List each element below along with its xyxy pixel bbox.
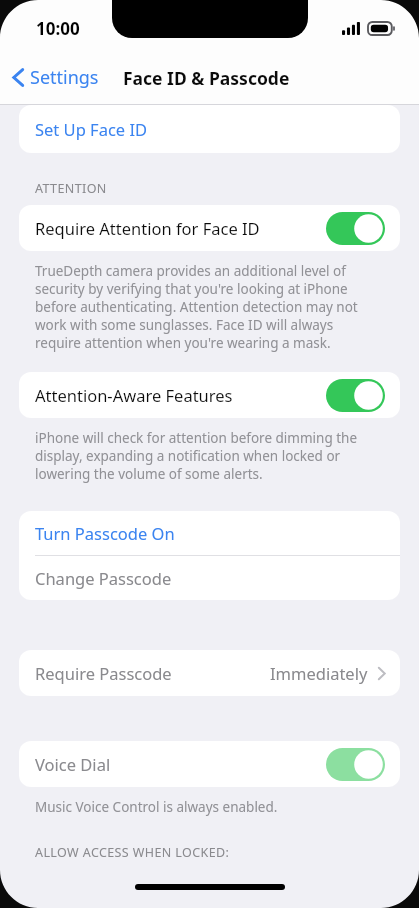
staticText: lowering the volume of some alerts.: [35, 465, 263, 483]
staticText: 10:00: [36, 17, 80, 40]
staticText: security by verifying that you're lookin…: [35, 280, 348, 298]
button[interactable]: Turn Passcode On: [19, 511, 400, 555]
button[interactable]: Require Passcode: [19, 650, 400, 696]
staticText: ATTENTION: [35, 180, 107, 197]
staticText: before authenticating. Attention detecti…: [35, 298, 358, 316]
staticText: Music Voice Control is always enabled.: [35, 798, 278, 816]
staticText: Immediately: [270, 662, 368, 684]
staticText: TrueDepth camera provides an additional …: [35, 262, 346, 280]
staticText: Turn Passcode On: [35, 522, 175, 544]
button[interactable]: Toggle: [326, 748, 385, 781]
staticText: Voice Dial: [35, 753, 111, 775]
button[interactable]: Settings: [8, 63, 103, 92]
staticText: Set Up Face ID: [35, 118, 148, 140]
button[interactable]: Change Passcode: [19, 556, 400, 600]
staticText: work with some sunglasses. Face ID will …: [35, 316, 334, 334]
staticText: Require Passcode: [35, 662, 172, 684]
button[interactable]: Set Up Face ID: [19, 105, 400, 153]
button[interactable]: Attention-Aware Features: [19, 372, 400, 418]
staticText: Change Passcode: [35, 567, 172, 589]
staticText: Face ID & Passcode: [123, 66, 290, 90]
staticText: iPhone will check for attention before d…: [35, 429, 358, 447]
staticText: Attention-Aware Features: [35, 384, 233, 406]
staticText: Settings: [30, 65, 99, 90]
staticText: require attention when you're wearing a …: [35, 334, 331, 352]
button[interactable]: Toggle: [326, 379, 385, 412]
button[interactable]: Toggle: [326, 212, 385, 245]
staticText: Require Attention for Face ID: [35, 217, 260, 239]
staticText: ALLOW ACCESS WHEN LOCKED:: [35, 844, 230, 861]
staticText: display, expanding a notification when l…: [35, 447, 341, 465]
button[interactable]: Require Attention for Face ID: [19, 205, 400, 251]
button[interactable]: Voice Dial: [19, 741, 400, 787]
